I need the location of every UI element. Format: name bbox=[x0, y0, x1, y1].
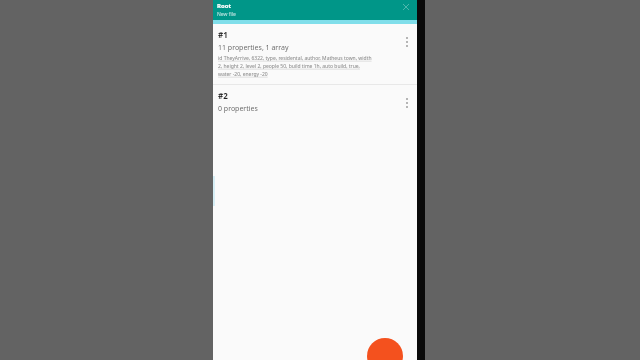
button[interactable]: Close bbox=[401, 2, 411, 12]
staticText: Root bbox=[217, 2, 232, 10]
staticText: water -20, energy -20 bbox=[218, 71, 268, 78]
button[interactable]: More options bbox=[400, 33, 414, 51]
staticText: 0 properties bbox=[218, 104, 258, 114]
staticText: id TheyArrive, 6322, type, residental, a… bbox=[218, 55, 372, 62]
staticText: #2 bbox=[218, 90, 228, 101]
staticText: 11 properties, 1 array bbox=[218, 43, 289, 53]
button[interactable]: More options bbox=[400, 94, 414, 112]
button[interactable]: #2 bbox=[213, 85, 417, 119]
staticText: New file bbox=[217, 11, 236, 18]
button[interactable]: Add bbox=[367, 338, 403, 360]
staticText: #1 bbox=[218, 29, 228, 40]
button[interactable]: #1 bbox=[213, 24, 417, 84]
staticText: 2, height 2, level 2, people 50, build t… bbox=[218, 63, 360, 70]
